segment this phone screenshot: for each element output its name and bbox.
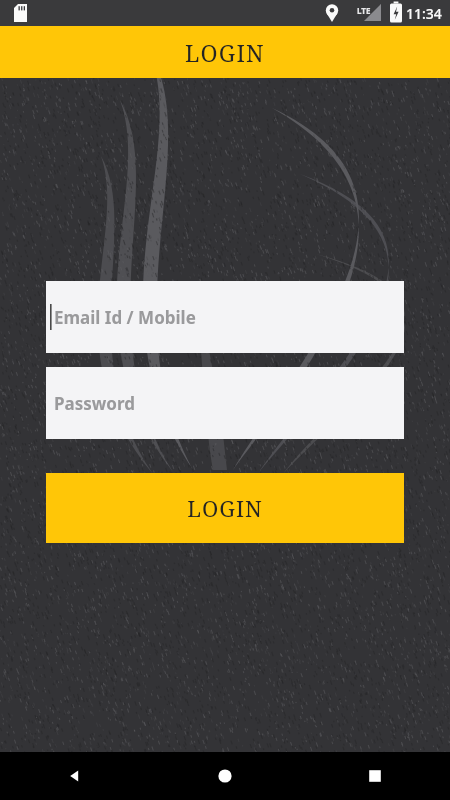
button[interactable]: Recent apps [300,752,450,800]
button[interactable]: Back [0,752,150,800]
staticText: LOGIN [187,493,263,523]
button[interactable]: LOGIN [46,473,404,543]
staticText: LTE [357,5,371,16]
staticText: Email Id / Mobile [54,306,196,329]
staticText: LOGIN [185,37,265,68]
button[interactable]: Email Id / Mobile [46,281,404,353]
staticText: Password [54,392,135,415]
staticText: 11:34 [406,4,442,23]
button[interactable]: Home [150,752,300,800]
button[interactable]: Password [46,367,404,439]
